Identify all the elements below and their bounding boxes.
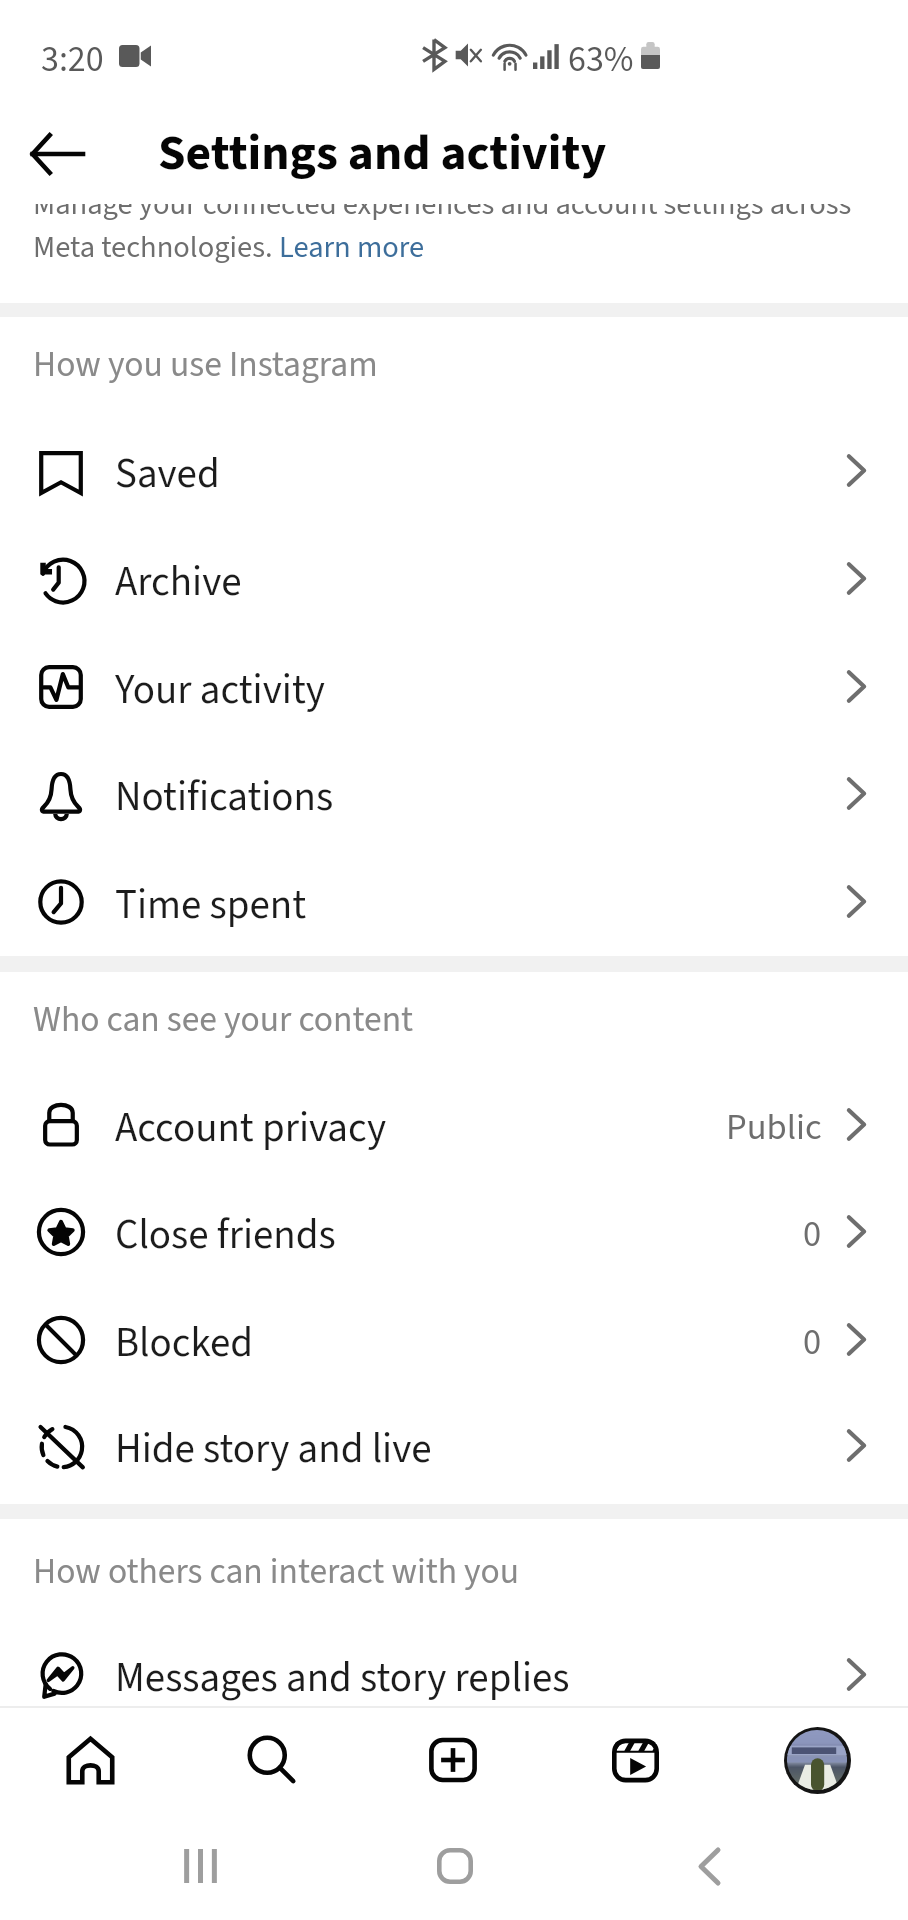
button[interactable]: Close friends <box>0 1180 908 1282</box>
button[interactable]: Reels <box>544 1708 726 1820</box>
button[interactable]: Your activity <box>0 635 908 737</box>
staticText: Saved <box>115 445 220 503</box>
button[interactable]: Home <box>411 1822 499 1910</box>
staticText: Public <box>726 1102 822 1154</box>
button[interactable]: Learn more <box>279 226 425 269</box>
button[interactable]: Recents <box>156 1822 244 1910</box>
button[interactable]: Back <box>17 114 97 194</box>
button[interactable]: Archive <box>0 527 908 629</box>
staticText: How you use Instagram <box>33 340 378 391</box>
staticText: Time spent <box>115 876 307 934</box>
staticText: Your activity <box>115 661 325 719</box>
staticText: 0 <box>803 1317 822 1369</box>
staticText: Settings and activity <box>158 118 607 188</box>
staticText: 63% <box>568 34 634 85</box>
staticText: Who can see your content <box>33 995 414 1046</box>
button[interactable]: Saved <box>0 419 908 521</box>
button[interactable]: Home <box>0 1708 181 1820</box>
staticText: How others can interact with you <box>33 1547 520 1598</box>
button[interactable]: Blocked <box>0 1288 908 1390</box>
button[interactable]: Profile <box>726 1708 908 1820</box>
staticText: Blocked <box>115 1314 254 1372</box>
staticText: Archive <box>115 553 242 611</box>
button[interactable]: Search <box>181 1708 362 1820</box>
button[interactable]: Notifications <box>0 742 908 844</box>
button[interactable]: Create <box>362 1708 544 1820</box>
staticText: Account privacy <box>115 1099 387 1157</box>
staticText: Notifications <box>115 768 334 826</box>
button[interactable]: Hide story and live <box>0 1394 908 1496</box>
staticText: 3:20 <box>41 34 104 85</box>
staticText: 0 <box>803 1209 822 1261</box>
staticText: Close friends <box>115 1206 336 1264</box>
button[interactable]: Account privacy <box>0 1073 908 1175</box>
staticText: Meta technologies. <box>33 226 279 269</box>
button[interactable]: Time spent <box>0 850 908 952</box>
staticText: Manage your connected experiences and ac… <box>33 183 852 226</box>
staticText: Hide story and live <box>115 1420 432 1478</box>
button[interactable]: Messages and story replies <box>0 1623 908 1725</box>
staticText: Messages and story replies <box>115 1649 570 1707</box>
button[interactable]: Back <box>665 1822 753 1910</box>
